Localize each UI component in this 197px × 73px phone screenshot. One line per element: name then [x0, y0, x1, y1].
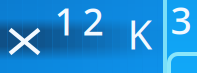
staticText: 3 [170, 0, 191, 45]
staticText: K [127, 7, 152, 60]
staticText: 1 [54, 0, 75, 46]
staticText: 2 [82, 0, 103, 46]
